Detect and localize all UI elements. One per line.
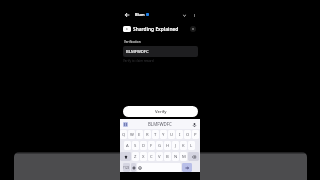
- staticText: M: [182, 154, 186, 160]
- staticText: L: [190, 143, 193, 149]
- button[interactable]: U: [168, 130, 175, 139]
- button[interactable]: G: [156, 141, 163, 150]
- button[interactable]: ?123: [123, 163, 130, 172]
- button[interactable]: F: [148, 141, 155, 150]
- staticText: U: [170, 132, 174, 138]
- button[interactable]: O: [184, 130, 191, 139]
- button[interactable]: V: [156, 152, 163, 161]
- button[interactable]: Close: [190, 26, 196, 32]
- button[interactable]: H: [164, 141, 171, 150]
- button[interactable]: T: [152, 130, 159, 139]
- staticText: Blum: [135, 12, 145, 17]
- button[interactable]: Y: [160, 130, 167, 139]
- button[interactable]: Q: [120, 130, 127, 139]
- staticText: BLMFWDFC: [126, 49, 149, 55]
- button[interactable]: BLMFWDFC: [123, 46, 198, 57]
- staticText: ?123: [123, 166, 130, 170]
- other: enter: [185, 166, 189, 170]
- button[interactable]: Voice input: [192, 122, 197, 127]
- staticText: Verify to claim reward: [123, 59, 154, 63]
- button[interactable]: emojiLeft: [137, 163, 181, 172]
- button[interactable]: Expand: [180, 11, 188, 19]
- staticText: G: [158, 143, 162, 149]
- staticText: A: [126, 143, 129, 149]
- other: back: [192, 155, 196, 159]
- staticText: E: [138, 132, 141, 138]
- staticText: Z: [134, 154, 137, 160]
- staticText: F: [150, 143, 153, 149]
- button[interactable]: W: [128, 130, 135, 139]
- staticText: S: [134, 143, 137, 149]
- staticText: Q: [122, 132, 126, 138]
- staticText: N: [174, 154, 178, 160]
- button[interactable]: J: [172, 141, 179, 150]
- staticText: Verification: [124, 40, 141, 44]
- button[interactable]: Z: [132, 152, 139, 161]
- button[interactable]: lang: [131, 163, 136, 172]
- staticText: Y: [162, 132, 165, 138]
- button[interactable]: enter: [182, 163, 192, 172]
- button[interactable]: L: [188, 141, 195, 150]
- button[interactable]: R: [144, 130, 151, 139]
- button[interactable]: shift: [120, 152, 131, 161]
- staticText: J: [175, 143, 177, 149]
- button[interactable]: More options: [190, 11, 198, 19]
- button[interactable]: B: [164, 152, 171, 161]
- staticText: D: [142, 143, 146, 149]
- button[interactable]: X: [140, 152, 147, 161]
- staticText: O: [186, 132, 190, 138]
- button[interactable]: Sharding Explained: [120, 23, 200, 35]
- button[interactable]: Verify: [123, 106, 198, 117]
- button[interactable]: M: [180, 152, 187, 161]
- staticText: C: [150, 154, 153, 160]
- button[interactable]: C: [148, 152, 155, 161]
- button[interactable]: E: [136, 130, 143, 139]
- button[interactable]: N: [172, 152, 179, 161]
- other: shift: [124, 155, 128, 159]
- staticText: P: [194, 132, 197, 138]
- staticText: X: [142, 154, 145, 160]
- button[interactable]: back: [188, 152, 199, 161]
- staticText: Sharding Explained: [133, 26, 179, 33]
- button[interactable]: Switch keyboard: [123, 122, 128, 127]
- staticText: H: [166, 143, 170, 149]
- staticText: K: [182, 143, 185, 149]
- staticText: T: [154, 132, 157, 138]
- button[interactable]: S: [132, 141, 139, 150]
- staticText: I: [179, 132, 181, 138]
- button[interactable]: K: [180, 141, 187, 150]
- staticText: B: [166, 154, 169, 160]
- staticText: V: [158, 154, 161, 160]
- button[interactable]: A: [124, 141, 131, 150]
- staticText: R: [146, 132, 149, 138]
- staticText: BLMFWDFC: [148, 121, 172, 127]
- other: emojiLeft: [138, 166, 142, 170]
- button[interactable]: D: [140, 141, 147, 150]
- other: lang: [132, 166, 136, 170]
- button[interactable]: I: [176, 130, 183, 139]
- staticText: Verify: [155, 109, 167, 115]
- staticText: W: [130, 132, 134, 138]
- button[interactable]: P: [192, 130, 199, 139]
- button[interactable]: Back: [122, 10, 131, 19]
